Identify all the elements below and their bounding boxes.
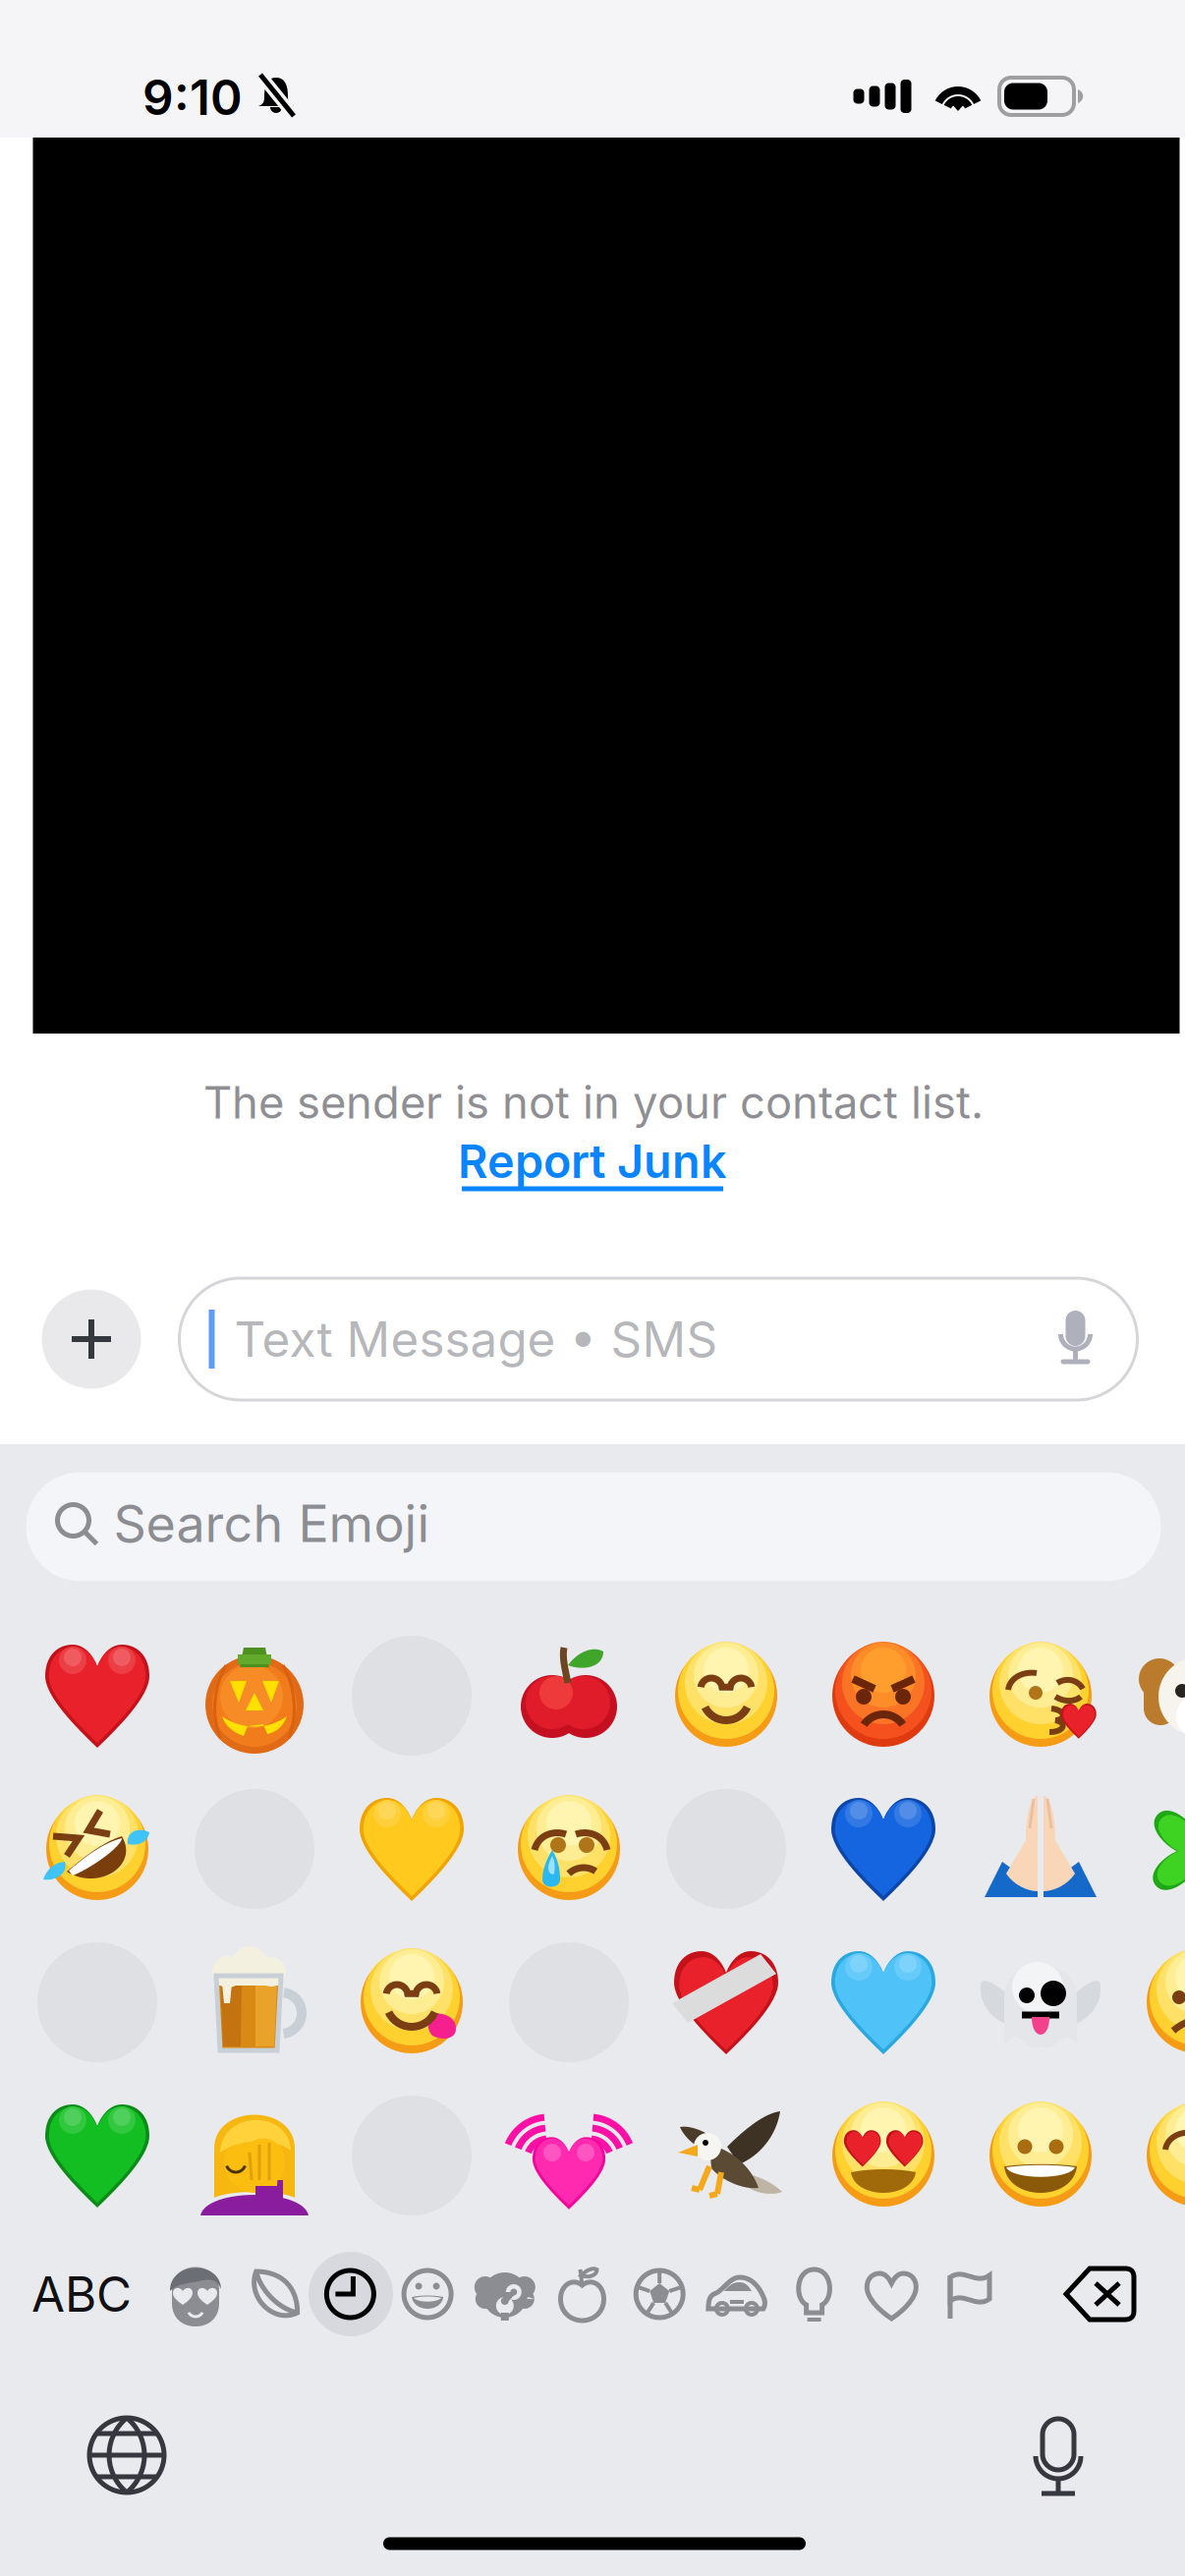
button[interactable] [810, 1933, 957, 2071]
button[interactable] [1124, 1627, 1185, 1764]
button[interactable] [967, 1933, 1114, 2071]
button[interactable] [495, 1933, 643, 2071]
button[interactable]: Symbols [857, 2260, 926, 2328]
button[interactable]: Smileys and people [393, 2260, 462, 2328]
button[interactable] [652, 2087, 800, 2224]
button[interactable] [810, 1780, 957, 1918]
button[interactable] [810, 2087, 957, 2224]
button[interactable] [652, 1780, 800, 1918]
button[interactable] [967, 2087, 1114, 2224]
button[interactable]: Add attachment [42, 1289, 141, 1389]
button[interactable] [967, 1627, 1114, 1764]
button[interactable] [810, 1627, 957, 1764]
button[interactable]: Animals and nature [470, 2260, 539, 2328]
button[interactable]: Activity [625, 2260, 694, 2328]
button[interactable] [181, 1933, 328, 2071]
button[interactable] [24, 1627, 171, 1764]
button[interactable] [967, 1780, 1114, 1918]
button[interactable] [338, 2087, 485, 2224]
button[interactable] [181, 2087, 328, 2224]
button[interactable]: Travel and places [702, 2260, 771, 2328]
button[interactable] [181, 1627, 328, 1764]
button[interactable] [1124, 1933, 1185, 2071]
button[interactable] [338, 1780, 485, 1918]
button[interactable] [1124, 2087, 1185, 2224]
button[interactable] [652, 1933, 800, 2071]
button[interactable]: Next keyboard [85, 2414, 168, 2496]
button[interactable] [338, 1627, 485, 1764]
staticText: The sender is not in your contact list. [203, 1075, 984, 1129]
button[interactable]: Frequently used [161, 2260, 230, 2328]
button[interactable]: Flags [934, 2260, 1003, 2328]
button[interactable]: ABC [23, 2255, 141, 2333]
button[interactable] [24, 2087, 171, 2224]
button[interactable]: Objects [780, 2260, 849, 2328]
button[interactable]: Text Message • SMS [179, 1278, 1137, 1400]
button[interactable]: Dictate [1028, 2417, 1089, 2501]
staticText: Report Junk [458, 1134, 727, 1189]
button[interactable] [495, 2087, 643, 2224]
staticText: Search Emoji [113, 1492, 430, 1554]
button[interactable] [1124, 1780, 1185, 1918]
button[interactable] [24, 1780, 171, 1918]
button[interactable] [652, 1627, 800, 1764]
button[interactable] [181, 1780, 328, 1918]
button[interactable] [495, 1780, 643, 1918]
button[interactable] [338, 1933, 485, 2071]
button[interactable] [495, 1627, 643, 1764]
button[interactable] [24, 1933, 171, 2071]
button[interactable]: Recents [316, 2260, 385, 2328]
button[interactable]: Report Junk [462, 1134, 723, 1203]
button[interactable]: Food and drink [548, 2260, 617, 2328]
button[interactable]: Search Emoji [26, 1472, 1161, 1581]
staticText: 9:10 [142, 68, 243, 127]
staticText: Text Message • SMS [234, 1310, 718, 1368]
button[interactable]: Delete [1062, 2264, 1139, 2324]
staticText: ABC [31, 2265, 132, 2323]
button[interactable]: Smileys [238, 2260, 307, 2328]
